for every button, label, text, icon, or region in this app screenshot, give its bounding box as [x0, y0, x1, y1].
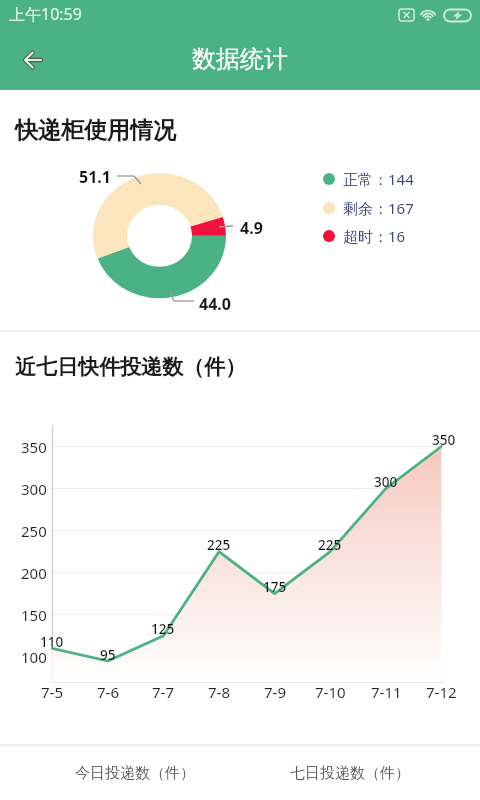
staticText: 225 [318, 536, 342, 554]
staticText: 7-11 [371, 682, 402, 702]
staticText: 快递柜使用情况 [15, 116, 176, 145]
staticText: 100 [21, 647, 47, 667]
staticText: 300 [374, 473, 398, 491]
staticText: 上午10:59 [9, 3, 82, 25]
staticText: 300 [21, 479, 47, 499]
staticText: 250 [21, 521, 47, 541]
staticText: 超时：16 [343, 226, 406, 246]
staticText: 近七日快件投递数（件） [15, 354, 246, 380]
staticText: 数据统计 [192, 44, 288, 74]
staticText: 7-8 [208, 682, 230, 702]
staticText: 350 [432, 431, 456, 449]
staticText: 7-12 [426, 682, 457, 702]
staticText: 7-6 [97, 682, 119, 702]
staticText: 7-9 [264, 682, 286, 702]
staticText: 150 [21, 605, 47, 625]
staticText: 7-10 [315, 682, 346, 702]
staticText: 175 [263, 578, 287, 596]
staticText: 剩余：167 [343, 198, 414, 218]
button[interactable]: 七日投递数（件） [250, 746, 450, 800]
staticText: 七日投递数（件） [290, 764, 410, 783]
staticText: 今日投递数（件） [75, 764, 195, 783]
staticText: 44.0 [199, 293, 231, 315]
staticText: 225 [207, 536, 231, 554]
staticText: 7-7 [152, 682, 174, 702]
staticText: 4.9 [240, 217, 263, 239]
staticText: 110 [40, 633, 64, 651]
button[interactable]: 今日投递数（件） [35, 746, 235, 800]
staticText: 95 [100, 646, 116, 664]
staticText: 7-5 [41, 682, 63, 702]
staticText: 125 [151, 620, 175, 638]
staticText: 51.1 [79, 166, 111, 188]
button[interactable] [13, 40, 53, 80]
staticText: 200 [21, 563, 47, 583]
staticText: 正常：144 [343, 169, 414, 189]
staticText: 350 [21, 437, 47, 457]
